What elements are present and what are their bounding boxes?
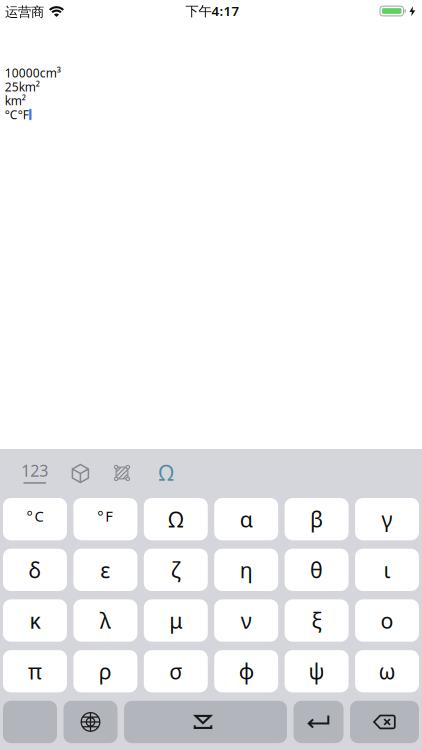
staticText: θ [310, 556, 323, 584]
staticText: Ω [158, 458, 173, 487]
button[interactable]: γ [355, 498, 419, 540]
staticText: ο [380, 606, 393, 635]
button[interactable]: ω [355, 650, 419, 692]
button[interactable]: ξ [285, 599, 349, 642]
button[interactable]: ρ [73, 650, 137, 692]
button[interactable] [63, 701, 117, 743]
staticText: ζ [171, 556, 181, 584]
button[interactable]: ε [73, 549, 137, 591]
button[interactable]: 123 [15, 455, 55, 489]
button[interactable] [63, 456, 97, 490]
button[interactable]: λ [73, 599, 137, 642]
staticText: α [240, 505, 253, 533]
staticText: π [28, 657, 42, 685]
button[interactable] [3, 701, 57, 743]
button[interactable]: ο [355, 599, 419, 642]
button[interactable]: μ [144, 599, 208, 642]
button[interactable]: ζ [144, 549, 208, 591]
button[interactable]: ν [214, 599, 278, 642]
staticText: 25km² [5, 79, 40, 95]
staticText: δ [28, 556, 41, 584]
button[interactable]: φ [214, 650, 278, 692]
staticText: η [240, 556, 253, 584]
staticText: 运营商 [5, 4, 44, 20]
staticText: ξ [312, 606, 322, 635]
staticText: 下午4:17 [185, 2, 239, 20]
staticText: ° F [97, 506, 113, 526]
staticText: β [310, 505, 323, 533]
staticText: Ω [168, 505, 183, 533]
button[interactable] [105, 456, 139, 490]
staticText: ψ [309, 657, 325, 685]
button[interactable]: θ [285, 549, 349, 591]
button[interactable]: π [3, 650, 67, 692]
staticText: 123 [21, 460, 48, 481]
staticText: km² [5, 93, 26, 109]
button[interactable] [350, 701, 419, 743]
button[interactable]: Ω [144, 498, 208, 540]
staticText: ε [100, 556, 110, 584]
button[interactable]: ι [355, 549, 419, 591]
staticText: κ [29, 606, 40, 635]
button[interactable]: α [214, 498, 278, 540]
staticText: ν [241, 606, 252, 635]
button[interactable]: δ [3, 549, 67, 591]
staticText: γ [381, 505, 392, 533]
staticText: ι [383, 556, 390, 584]
staticText: λ [100, 606, 111, 635]
staticText: ° C [26, 506, 43, 526]
staticText: °C°F [5, 106, 29, 122]
staticText: φ [239, 657, 254, 685]
staticText: σ [169, 657, 182, 685]
button[interactable] [293, 701, 343, 743]
button[interactable]: σ [144, 650, 208, 692]
staticText: μ [169, 606, 182, 635]
button[interactable] [124, 701, 287, 743]
button[interactable]: ° C [3, 498, 67, 540]
staticText: ω [378, 657, 395, 685]
staticText: ρ [99, 657, 112, 685]
button[interactable]: ° F [73, 498, 137, 540]
button[interactable]: Ω [149, 455, 183, 489]
button[interactable]: η [214, 549, 278, 591]
button[interactable]: ψ [285, 650, 349, 692]
button[interactable]: β [285, 498, 349, 540]
staticText: 10000cm³ [5, 65, 61, 81]
button[interactable]: κ [3, 599, 67, 642]
